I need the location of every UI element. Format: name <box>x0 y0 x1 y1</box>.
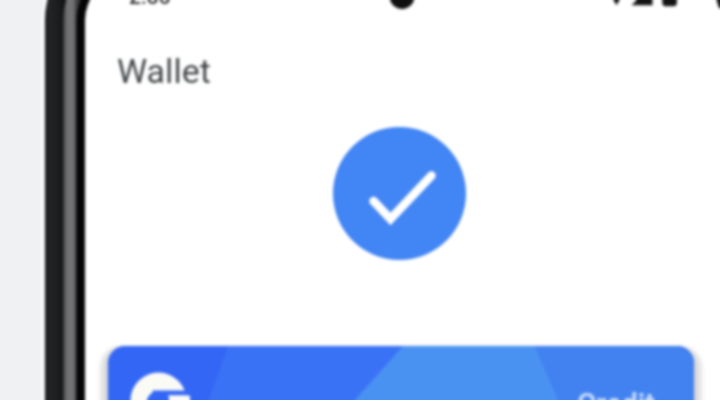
staticText: 2:56 <box>129 0 171 10</box>
staticText: Wallet <box>117 51 211 91</box>
button[interactable]: Credit <box>108 346 694 400</box>
staticText: Credit <box>577 387 655 400</box>
button[interactable]: Payment successful <box>333 127 466 260</box>
